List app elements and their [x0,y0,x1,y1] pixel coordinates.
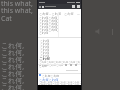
staticText: これ何これ何, [39,28,59,32]
staticText: これ何 - これ何 [39,12,62,16]
staticText: これ何これ何 [42,74,60,78]
staticText: これ何 [39,57,50,62]
staticText: これ何これ何, [39,16,59,20]
button[interactable]: Volume [95,28,102,35]
staticText: これ何, [1,83,25,90]
staticText: これ何これ何, [39,25,59,29]
staticText: これ何 [40,51,50,55]
staticText: これ何これ何これ何これ何これ何これ何これ何 [39,83,82,89]
staticText: これ何 [39,64,47,67]
staticText: this what, [1,6,33,16]
staticText: これ何これ何 [39,78,59,82]
staticText: これ何 [39,31,49,35]
staticText: これ何これ何これ何これ何これ何これ何これ何これ何これ何 [39,61,82,67]
staticText: これ何 [40,42,50,46]
staticText: これ何 [40,45,50,49]
staticText: これ何 [40,39,50,43]
staticText: Cat [1,14,12,24]
staticText: これ何 [64,12,74,16]
staticText: これ何これ何, [39,19,59,23]
staticText: this what, [1,0,33,9]
staticText: これ何, [1,48,25,58]
staticText: これ何, [1,76,25,86]
staticText: … [77,12,80,16]
staticText: これ何, [1,55,25,65]
staticText: これ何 [40,48,50,52]
staticText: これ何これ何これ何これ何これ何これ何これ何これ何 [39,81,82,87]
staticText: これ何 [40,54,50,58]
staticText: これ何, [1,69,25,79]
staticText: これ何これ何, [39,22,59,26]
staticText: これ何, [1,41,25,51]
staticText: これ何, [1,62,25,72]
